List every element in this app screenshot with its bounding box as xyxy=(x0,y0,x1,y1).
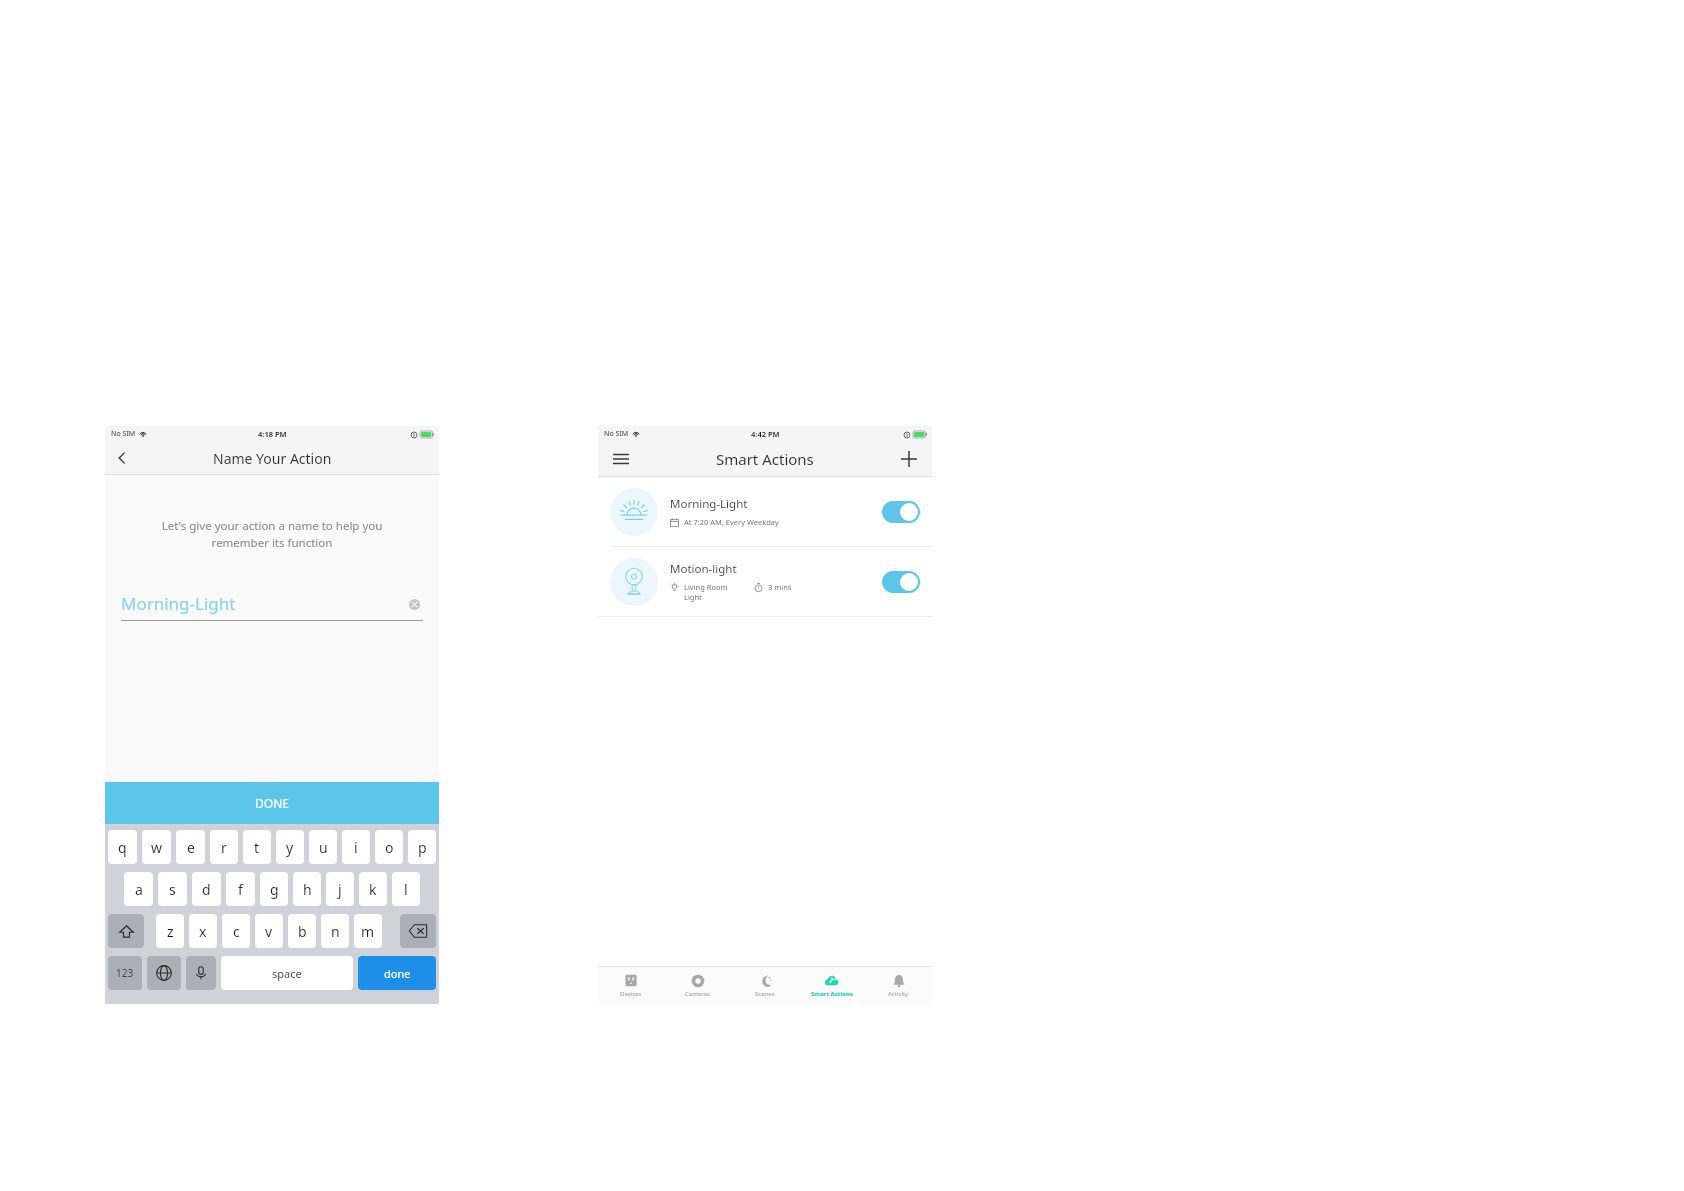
button[interactable]: Dictate xyxy=(186,956,216,990)
button[interactable]: e xyxy=(176,830,205,864)
button[interactable]: v xyxy=(255,914,283,948)
button[interactable]: Language xyxy=(147,956,181,990)
staticText: u xyxy=(319,838,328,857)
button[interactable]: done xyxy=(358,956,436,990)
staticText: v xyxy=(265,922,273,941)
button[interactable]: Toggle xyxy=(882,501,920,523)
button[interactable]: n xyxy=(321,914,349,948)
staticText: Devices xyxy=(620,990,642,998)
staticText: b xyxy=(298,922,307,941)
button[interactable]: Motion-light xyxy=(598,547,932,616)
staticText: DONE xyxy=(255,795,289,811)
button[interactable]: Devices xyxy=(598,967,664,1004)
button[interactable]: p xyxy=(408,830,436,864)
staticText: Let's give your action a name to help yo… xyxy=(123,518,421,551)
staticText: a xyxy=(135,880,143,899)
button[interactable]: Shift xyxy=(108,914,144,948)
staticText: n xyxy=(331,922,340,941)
staticText: i xyxy=(354,838,358,857)
staticText: c xyxy=(233,922,240,941)
staticText: 123 xyxy=(116,966,134,980)
staticText: Cameras xyxy=(685,990,710,998)
staticText: y xyxy=(286,838,294,857)
staticText: No SIM xyxy=(604,429,629,439)
staticText: o xyxy=(385,838,394,857)
staticText: g xyxy=(270,880,279,899)
staticText: j xyxy=(338,880,342,899)
staticText: x xyxy=(199,922,207,941)
button[interactable]: m xyxy=(354,914,382,948)
staticText: 4:42 PM xyxy=(751,429,780,439)
button[interactable]: c xyxy=(222,914,250,948)
staticText: s xyxy=(169,880,176,899)
button[interactable]: Add xyxy=(896,446,922,472)
staticText: e xyxy=(187,838,195,857)
button[interactable]: i xyxy=(342,830,370,864)
staticText: 3 mins xyxy=(768,582,792,592)
button[interactable]: a xyxy=(124,872,153,906)
staticText: At 7:20 AM, Every Weekday xyxy=(684,517,779,527)
button[interactable]: Numbers xyxy=(108,956,142,990)
staticText: Activity xyxy=(888,990,909,998)
staticText: z xyxy=(167,922,174,941)
button[interactable]: g xyxy=(260,872,288,906)
staticText: Morning-Light xyxy=(121,592,236,615)
staticText: Morning-Light xyxy=(670,496,748,512)
staticText: Motion-light xyxy=(670,561,737,577)
button[interactable]: f xyxy=(226,872,255,906)
staticText: No SIM xyxy=(111,429,136,439)
staticText: Smart Actions xyxy=(811,990,853,998)
button[interactable]: t xyxy=(243,830,271,864)
button[interactable]: b xyxy=(288,914,316,948)
staticText: l xyxy=(404,880,408,899)
staticText: f xyxy=(238,880,243,899)
staticText: Name Your Action xyxy=(213,449,332,468)
staticText: done xyxy=(384,966,411,981)
button[interactable]: s xyxy=(158,872,187,906)
button[interactable]: x xyxy=(189,914,217,948)
button[interactable]: Toggle xyxy=(882,571,920,593)
button[interactable]: l xyxy=(392,872,420,906)
staticText: k xyxy=(369,880,377,899)
button[interactable]: h xyxy=(293,872,321,906)
staticText: q xyxy=(118,838,127,857)
staticText: 4:18 PM xyxy=(258,429,287,439)
staticText: w xyxy=(151,838,163,857)
staticText: t xyxy=(254,838,260,857)
button[interactable]: z xyxy=(156,914,184,948)
button[interactable]: space xyxy=(221,956,353,990)
staticText: p xyxy=(418,838,427,857)
button[interactable]: Back xyxy=(105,442,139,474)
button[interactable]: DONE xyxy=(105,782,439,824)
button[interactable]: j xyxy=(326,872,354,906)
staticText: Scenes xyxy=(755,990,775,998)
button[interactable]: r xyxy=(210,830,238,864)
button[interactable]: Backspace xyxy=(400,914,436,948)
staticText: h xyxy=(303,880,312,899)
button[interactable]: q xyxy=(108,830,137,864)
button[interactable]: Cameras xyxy=(664,967,731,1004)
button[interactable]: o xyxy=(375,830,403,864)
button[interactable]: Scenes xyxy=(731,967,798,1004)
staticText: Smart Actions xyxy=(716,449,814,469)
button[interactable]: Morning-Light xyxy=(598,477,932,546)
button[interactable]: Smart Actions xyxy=(798,967,865,1004)
staticText: space xyxy=(272,966,302,981)
button[interactable]: w xyxy=(142,830,171,864)
button[interactable]: Activity xyxy=(865,967,932,1004)
staticText: d xyxy=(202,880,211,899)
button[interactable]: Clear text xyxy=(405,595,423,613)
button[interactable]: u xyxy=(309,830,337,864)
button[interactable]: Menu xyxy=(608,446,634,472)
button[interactable]: d xyxy=(192,872,221,906)
staticText: m xyxy=(361,922,375,941)
button[interactable]: k xyxy=(359,872,387,906)
button[interactable]: y xyxy=(276,830,304,864)
staticText: r xyxy=(221,838,227,857)
staticText: Living Room Light xyxy=(684,582,740,602)
